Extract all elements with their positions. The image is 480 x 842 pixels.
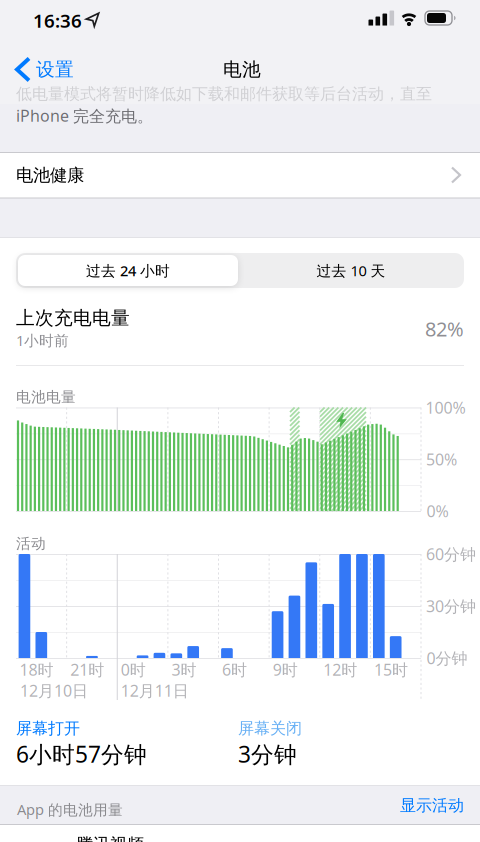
staticText: 0% bbox=[426, 500, 448, 522]
staticText: 12月11日 bbox=[121, 680, 189, 701]
staticText: 电池 bbox=[223, 58, 261, 81]
staticText: 6小时57分钟 bbox=[16, 739, 147, 769]
staticText: 腾讯视频 bbox=[76, 834, 144, 842]
button[interactable]: 电池健康 bbox=[0, 152, 480, 197]
staticText: 3分钟 bbox=[238, 739, 297, 769]
staticText: 设置 bbox=[36, 58, 74, 81]
staticText: iPhone 完全充电。 bbox=[16, 105, 153, 126]
staticText: 屏幕打开 bbox=[16, 718, 80, 738]
staticText: 12时 bbox=[323, 659, 357, 680]
staticText: 100% bbox=[425, 397, 465, 418]
button[interactable]: 设置 bbox=[17, 58, 74, 81]
staticText: 电池电量 bbox=[16, 388, 76, 406]
staticText: 30分钟 bbox=[426, 595, 476, 617]
staticText: 0时 bbox=[121, 659, 146, 680]
staticText: App 的电池用量 bbox=[17, 799, 123, 819]
staticText: 屏幕关闭 bbox=[238, 718, 302, 738]
button[interactable]: 显示活动 bbox=[400, 795, 464, 815]
button[interactable]: 过去 10 天 bbox=[240, 253, 462, 288]
staticText: 过去 24 小时 bbox=[86, 261, 170, 280]
staticText: 低电量模式将暂时降低如下载和邮件获取等后台活动，直至 bbox=[16, 84, 432, 104]
staticText: 1小时前 bbox=[16, 330, 69, 350]
staticText: 60分钟 bbox=[426, 543, 476, 565]
staticText: 50% bbox=[426, 449, 457, 470]
button[interactable]: 腾讯视频 bbox=[76, 834, 144, 842]
staticText: 活动 bbox=[16, 534, 46, 552]
staticText: 过去 10 天 bbox=[316, 261, 385, 280]
button[interactable]: 过去 24 小时 bbox=[18, 255, 238, 286]
staticText: 82% bbox=[425, 315, 464, 342]
staticText: 15时 bbox=[374, 659, 408, 680]
staticText: 12月10日 bbox=[20, 680, 88, 701]
staticText: 上次充电电量 bbox=[16, 306, 130, 329]
staticText: 18时 bbox=[19, 659, 53, 680]
staticText: 显示活动 bbox=[400, 795, 464, 815]
staticText: 0分钟 bbox=[426, 647, 467, 669]
staticText: 电池健康 bbox=[16, 164, 84, 186]
staticText: 16:36 bbox=[33, 8, 82, 33]
staticText: 9时 bbox=[273, 659, 298, 680]
staticText: 3时 bbox=[171, 659, 196, 680]
staticText: 6时 bbox=[222, 659, 247, 680]
staticText: 21时 bbox=[70, 659, 104, 680]
